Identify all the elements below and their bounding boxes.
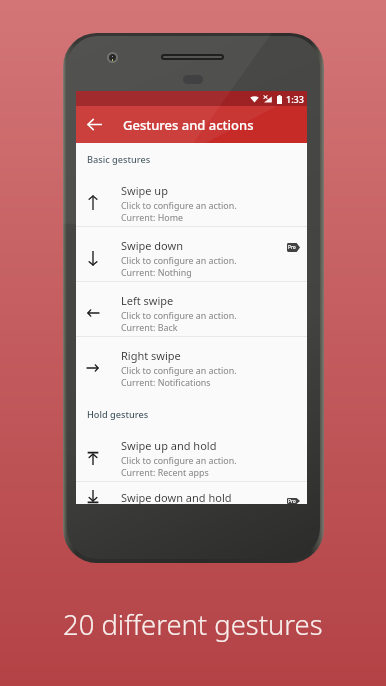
staticText: Swipe up and hold: [121, 438, 217, 453]
button[interactable]: Swipe up: [76, 172, 307, 226]
staticText: Current: Notifications: [121, 376, 211, 388]
staticText: Gestures and actions: [123, 116, 254, 134]
staticText: Click to configure an action.: [121, 454, 237, 466]
staticText: Click to configure an action.: [121, 309, 237, 321]
staticText: Current: Recent apps: [121, 466, 209, 478]
staticText: Pro: [288, 498, 296, 504]
staticText: Current: Home: [121, 211, 183, 223]
staticText: Right swipe: [121, 348, 181, 363]
staticText: Current: Back: [121, 321, 178, 333]
button[interactable]: Right swipe: [76, 337, 307, 391]
staticText: Left swipe: [121, 293, 174, 308]
staticText: 1:33: [286, 93, 304, 105]
staticText: Click to configure an action.: [121, 199, 237, 211]
staticText: Pro: [288, 244, 296, 251]
staticText: Swipe down: [121, 238, 183, 253]
staticText: Click to configure an action.: [121, 254, 237, 266]
button[interactable]: Back: [76, 106, 113, 143]
staticText: Current: Nothing: [121, 266, 192, 278]
button[interactable]: Swipe up and hold: [76, 427, 307, 481]
staticText: Swipe up: [121, 183, 168, 198]
staticText: Hold gestures: [87, 408, 149, 421]
staticText: 20 different gestures: [63, 606, 323, 643]
staticText: Swipe down and hold: [121, 490, 232, 504]
staticText: Basic gestures: [87, 153, 151, 166]
staticText: Click to configure an action.: [121, 364, 237, 376]
button[interactable]: Swipe down: [76, 227, 307, 281]
button[interactable]: Swipe down and hold: [76, 482, 307, 504]
button[interactable]: Left swipe: [76, 282, 307, 336]
